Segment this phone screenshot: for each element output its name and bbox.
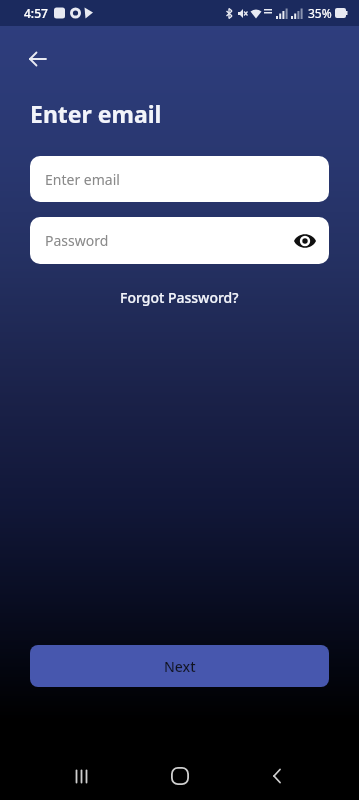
button[interactable] — [257, 756, 297, 796]
button[interactable]: Enter email — [30, 156, 329, 202]
staticText: 4:57 — [24, 5, 48, 21]
button[interactable] — [160, 756, 200, 796]
button[interactable]: Forgot Password? — [120, 288, 239, 307]
button[interactable] — [291, 227, 319, 255]
button[interactable] — [62, 756, 102, 796]
button[interactable]: Password — [30, 217, 329, 264]
staticText: Enter email — [45, 170, 120, 189]
button[interactable] — [22, 43, 54, 75]
staticText: Password — [45, 231, 109, 250]
staticText: Next — [164, 657, 196, 676]
staticText: 35% — [308, 5, 332, 21]
staticText: Forgot Password? — [120, 288, 239, 307]
button[interactable]: Next — [30, 645, 329, 687]
staticText: Enter email — [30, 98, 162, 129]
